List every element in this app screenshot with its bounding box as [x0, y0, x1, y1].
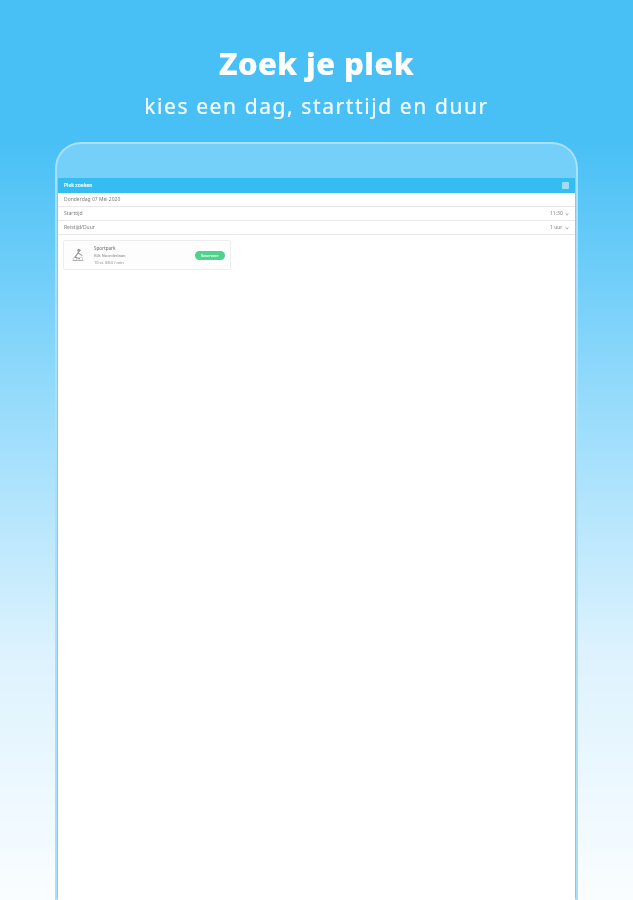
staticText: kies een dag, starttijd en duur — [0, 92, 633, 121]
button[interactable]: Donderdag 07 Mei 2020 — [58, 193, 575, 206]
staticText: 11:30 — [550, 210, 563, 217]
staticText: Reserveer — [201, 253, 219, 258]
staticText: Reistijd/Duur — [64, 224, 95, 231]
button[interactable]: Reistijd/Duur — [58, 221, 575, 234]
button[interactable]: Starttijd — [58, 207, 575, 220]
staticText: Starttijd — [64, 210, 83, 217]
staticText: Kilk Noorderlaan — [94, 253, 126, 258]
button[interactable]: Reserveer — [195, 251, 225, 260]
staticText: 1 uur — [550, 224, 563, 231]
staticText: 10 st. 08:3 / min — [94, 260, 124, 265]
staticText: Sportpark — [94, 245, 116, 251]
button[interactable]: Sportpark — [63, 240, 231, 270]
staticText: Zoek je plek — [0, 42, 633, 84]
staticText: Donderdag 07 Mei 2020 — [64, 196, 121, 203]
staticText: Plek zoeken — [64, 182, 93, 189]
button[interactable]: Menu — [562, 182, 569, 189]
